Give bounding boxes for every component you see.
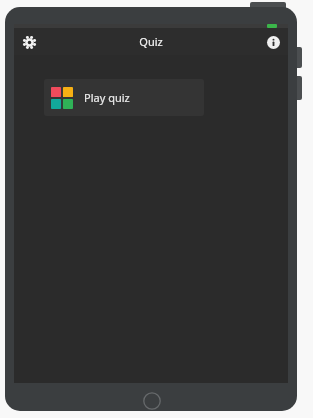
button[interactable]: Info [259, 28, 287, 56]
button[interactable]: Home [141, 390, 163, 411]
button[interactable]: Settings [15, 28, 43, 56]
staticText: Quiz [139, 34, 163, 49]
staticText: Play quiz [84, 90, 130, 105]
button[interactable]: Play quiz [44, 79, 204, 116]
